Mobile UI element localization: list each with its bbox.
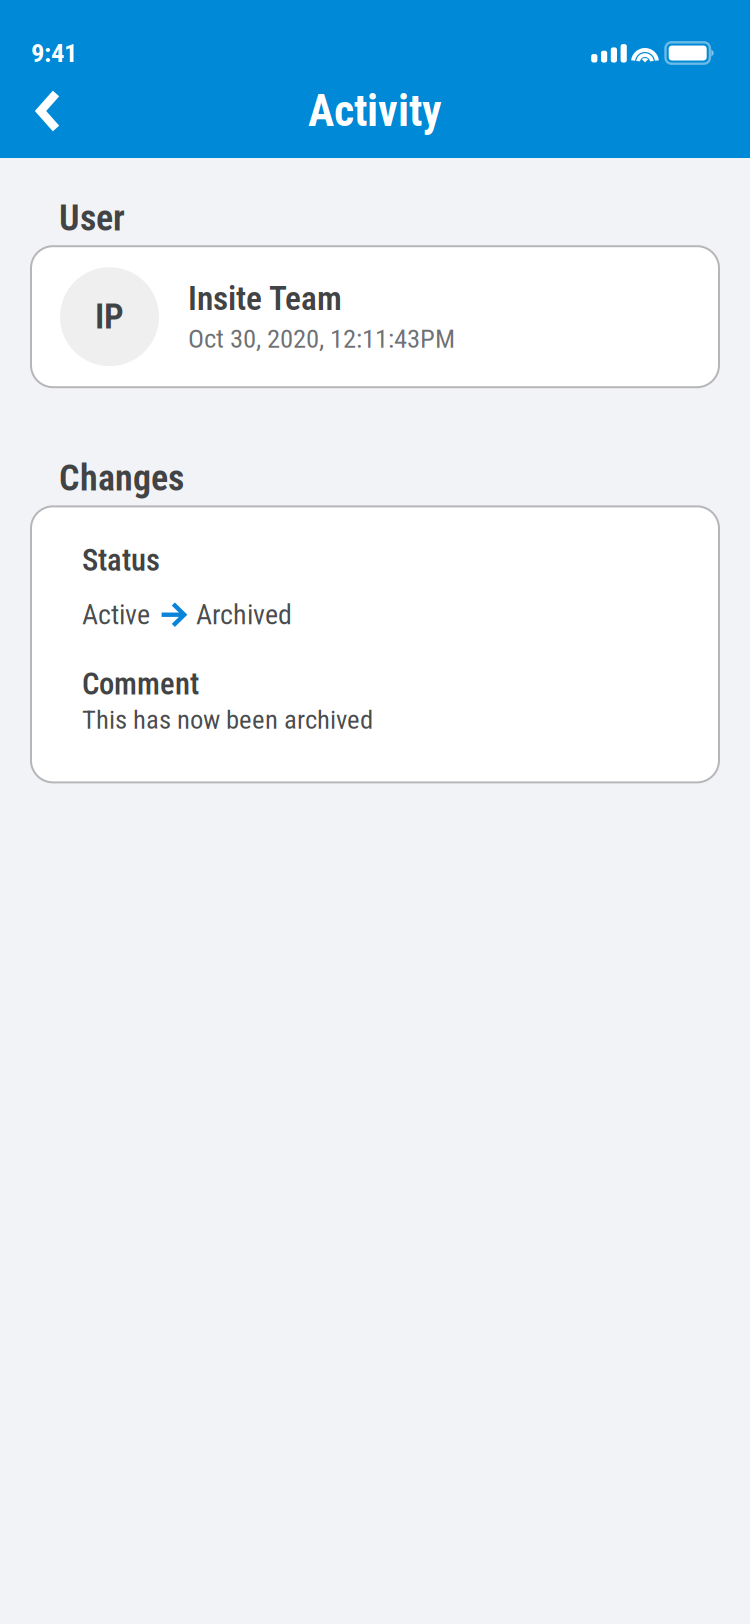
staticText: 9:41: [31, 37, 77, 69]
staticText: IP: [95, 296, 124, 337]
staticText: Changes: [59, 457, 184, 499]
button[interactable]: Back: [0, 76, 97, 146]
staticText: Active: [82, 598, 150, 631]
staticText: Activity: [308, 85, 442, 137]
staticText: Insite Team: [188, 279, 342, 318]
staticText: Status: [82, 542, 160, 578]
button[interactable]: IP: [31, 246, 719, 387]
staticText: User: [59, 197, 125, 239]
staticText: Archived: [196, 598, 292, 631]
staticText: Oct 30, 2020, 12:11:43PM: [188, 323, 455, 354]
staticText: Comment: [82, 666, 199, 702]
staticText: This has now been archived: [82, 704, 373, 735]
